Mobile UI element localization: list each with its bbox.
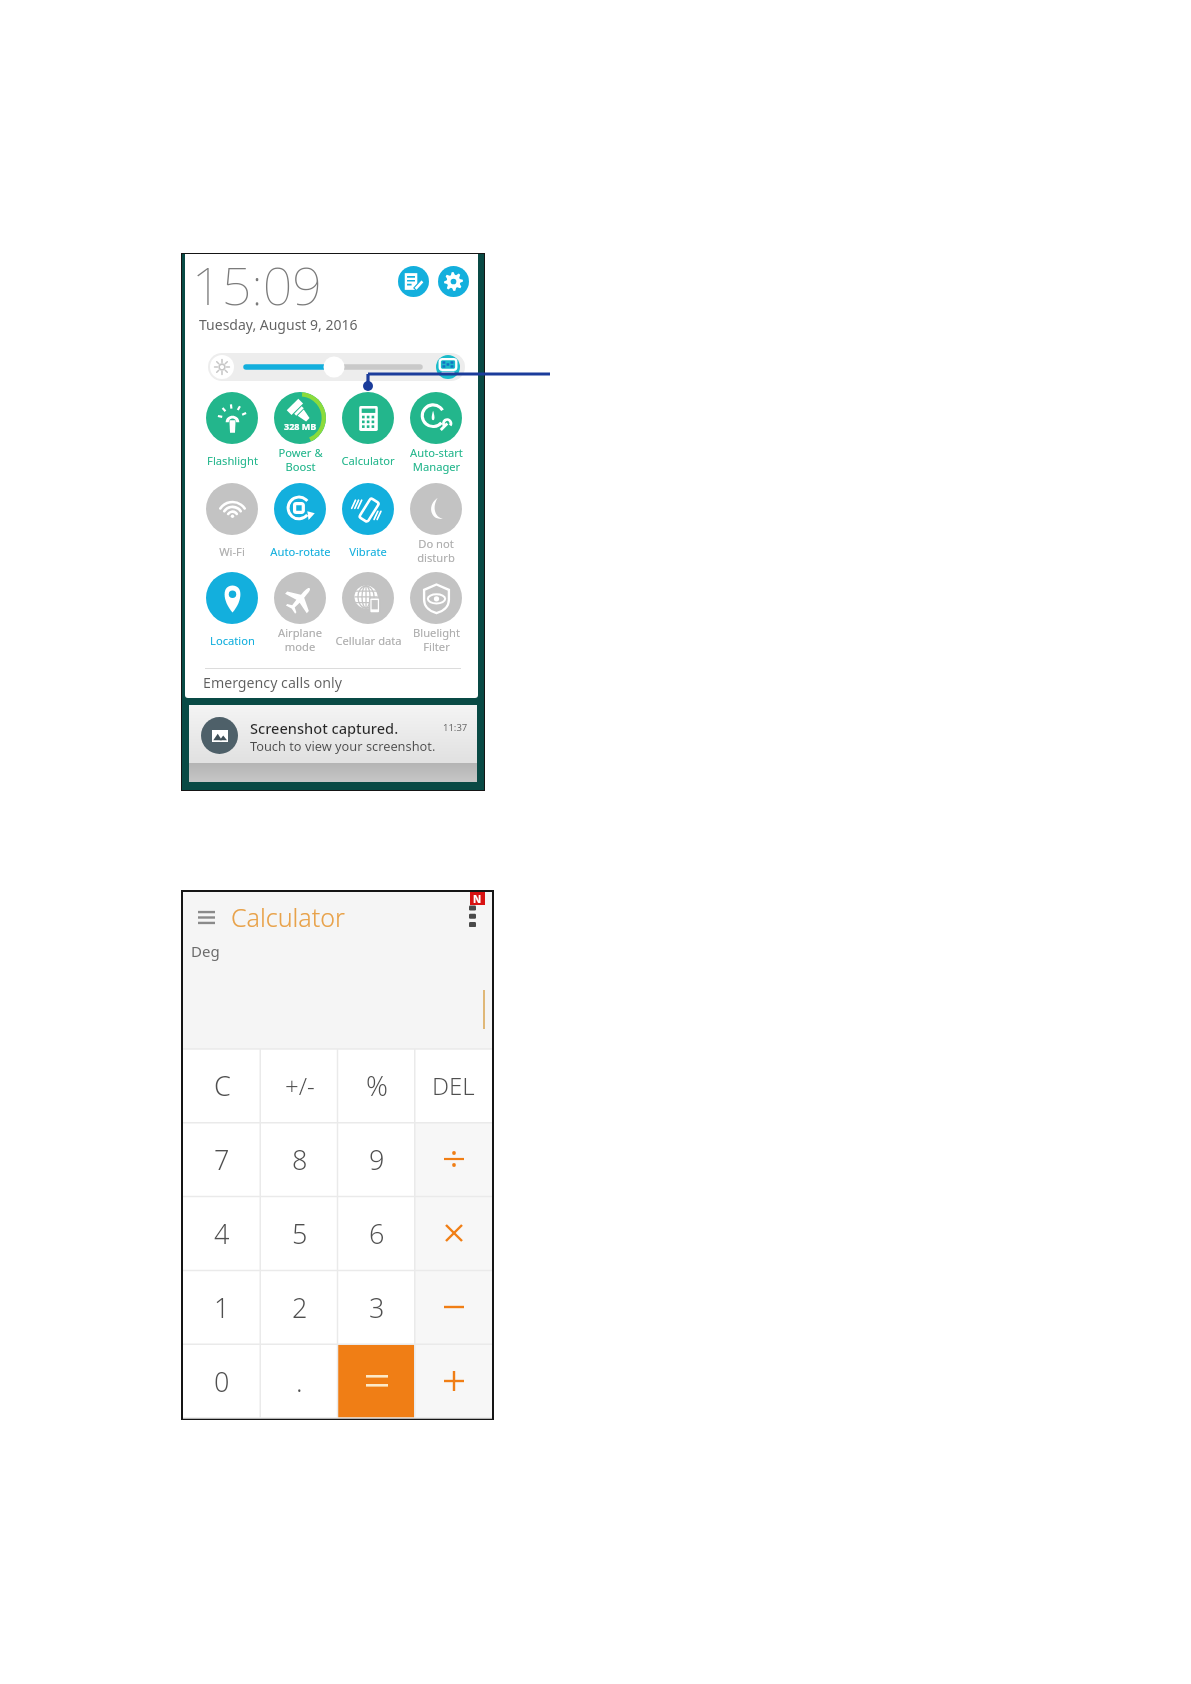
button[interactable]: Screenshot captured.	[189, 705, 477, 782]
staticText: Flashlight	[207, 453, 258, 468]
staticText: 11:37	[443, 721, 468, 734]
button[interactable]: Location	[198, 572, 266, 656]
staticText: %	[366, 1067, 388, 1104]
staticText: Auto-start Manager	[410, 445, 463, 475]
staticText: Calculator	[231, 900, 345, 934]
button[interactable]: Flashlight	[198, 392, 266, 476]
staticText: Cellular data	[335, 633, 402, 648]
staticText: Location	[210, 633, 255, 648]
staticText: Calculator	[341, 453, 395, 468]
button[interactable]: Decimal point	[261, 1344, 338, 1418]
staticText: 2	[292, 1289, 308, 1326]
button[interactable]: 0	[183, 1344, 261, 1418]
button[interactable]: Airplane mode	[266, 572, 334, 656]
staticText: 6	[369, 1215, 385, 1252]
staticText: C	[214, 1067, 231, 1104]
staticText: DEL	[432, 1069, 475, 1102]
staticText: 0	[214, 1363, 230, 1400]
button[interactable]: C	[183, 1049, 261, 1122]
button[interactable]: 9	[338, 1122, 415, 1196]
staticText: Auto-rotate	[270, 544, 331, 559]
button[interactable]: Calculator	[334, 392, 402, 476]
button[interactable]: 4	[183, 1196, 261, 1270]
staticText: 4	[214, 1215, 230, 1252]
button[interactable]: Auto-start Manager	[402, 392, 470, 476]
button[interactable]: Multiply	[415, 1196, 492, 1270]
staticText: Power & Boost	[278, 445, 323, 475]
button[interactable]: Vibrate	[334, 483, 402, 567]
staticText: .	[296, 1363, 303, 1400]
button[interactable]: Settings	[438, 266, 469, 297]
button[interactable]: Plus minus	[261, 1049, 338, 1122]
staticText: 8	[292, 1141, 308, 1178]
button[interactable]: Auto-rotate	[266, 483, 334, 567]
button[interactable]: Wi-Fi	[198, 483, 266, 567]
staticText: Wi-Fi	[219, 544, 245, 559]
button[interactable]: Auto brightness	[208, 353, 465, 381]
button[interactable]: DEL	[415, 1049, 492, 1122]
staticText: +/-	[285, 1069, 315, 1102]
button[interactable]: 7	[183, 1122, 261, 1196]
button[interactable]: Do not disturb	[402, 483, 470, 567]
button[interactable]: More options	[459, 903, 485, 929]
staticText: Touch to view your screenshot.	[250, 737, 436, 754]
staticText: Bluelight Filter	[413, 625, 460, 655]
staticText: Deg	[191, 941, 220, 961]
staticText: 7	[214, 1141, 230, 1178]
staticText: 3	[369, 1289, 385, 1326]
staticText: Tuesday, August 9, 2016	[199, 315, 358, 334]
staticText: 15:09	[192, 254, 323, 320]
button[interactable]: %	[338, 1049, 415, 1122]
button[interactable]: 5	[261, 1196, 338, 1270]
staticText: N	[473, 892, 482, 905]
button[interactable]: 328 MB	[266, 392, 334, 476]
button[interactable]: Divide	[415, 1122, 492, 1196]
button[interactable]: Equals	[338, 1344, 415, 1418]
staticText: 9	[369, 1141, 385, 1178]
button[interactable]: 8	[261, 1122, 338, 1196]
button[interactable]: Minus	[415, 1270, 492, 1344]
button[interactable]: Plus	[415, 1344, 492, 1418]
button[interactable]: 2	[261, 1270, 338, 1344]
button[interactable]: 1	[183, 1270, 261, 1344]
staticText: Emergency calls only	[203, 673, 342, 692]
staticText: Screenshot captured.	[250, 718, 399, 738]
staticText: 1	[214, 1289, 230, 1326]
staticText: Airplane mode	[278, 625, 322, 655]
button[interactable]: 6	[338, 1196, 415, 1270]
button[interactable]: Edit quick settings	[398, 266, 429, 297]
staticText: Do not disturb	[417, 536, 455, 566]
button[interactable]: Bluelight Filter	[402, 572, 470, 656]
staticText: 5	[292, 1215, 308, 1252]
staticText: Vibrate	[349, 544, 387, 559]
button[interactable]: Auto brightness	[436, 355, 460, 379]
button[interactable]: Cellular data	[334, 572, 402, 656]
staticText: 328 MB	[284, 420, 317, 432]
button[interactable]: 3	[338, 1270, 415, 1344]
button[interactable]: Menu	[193, 904, 219, 930]
